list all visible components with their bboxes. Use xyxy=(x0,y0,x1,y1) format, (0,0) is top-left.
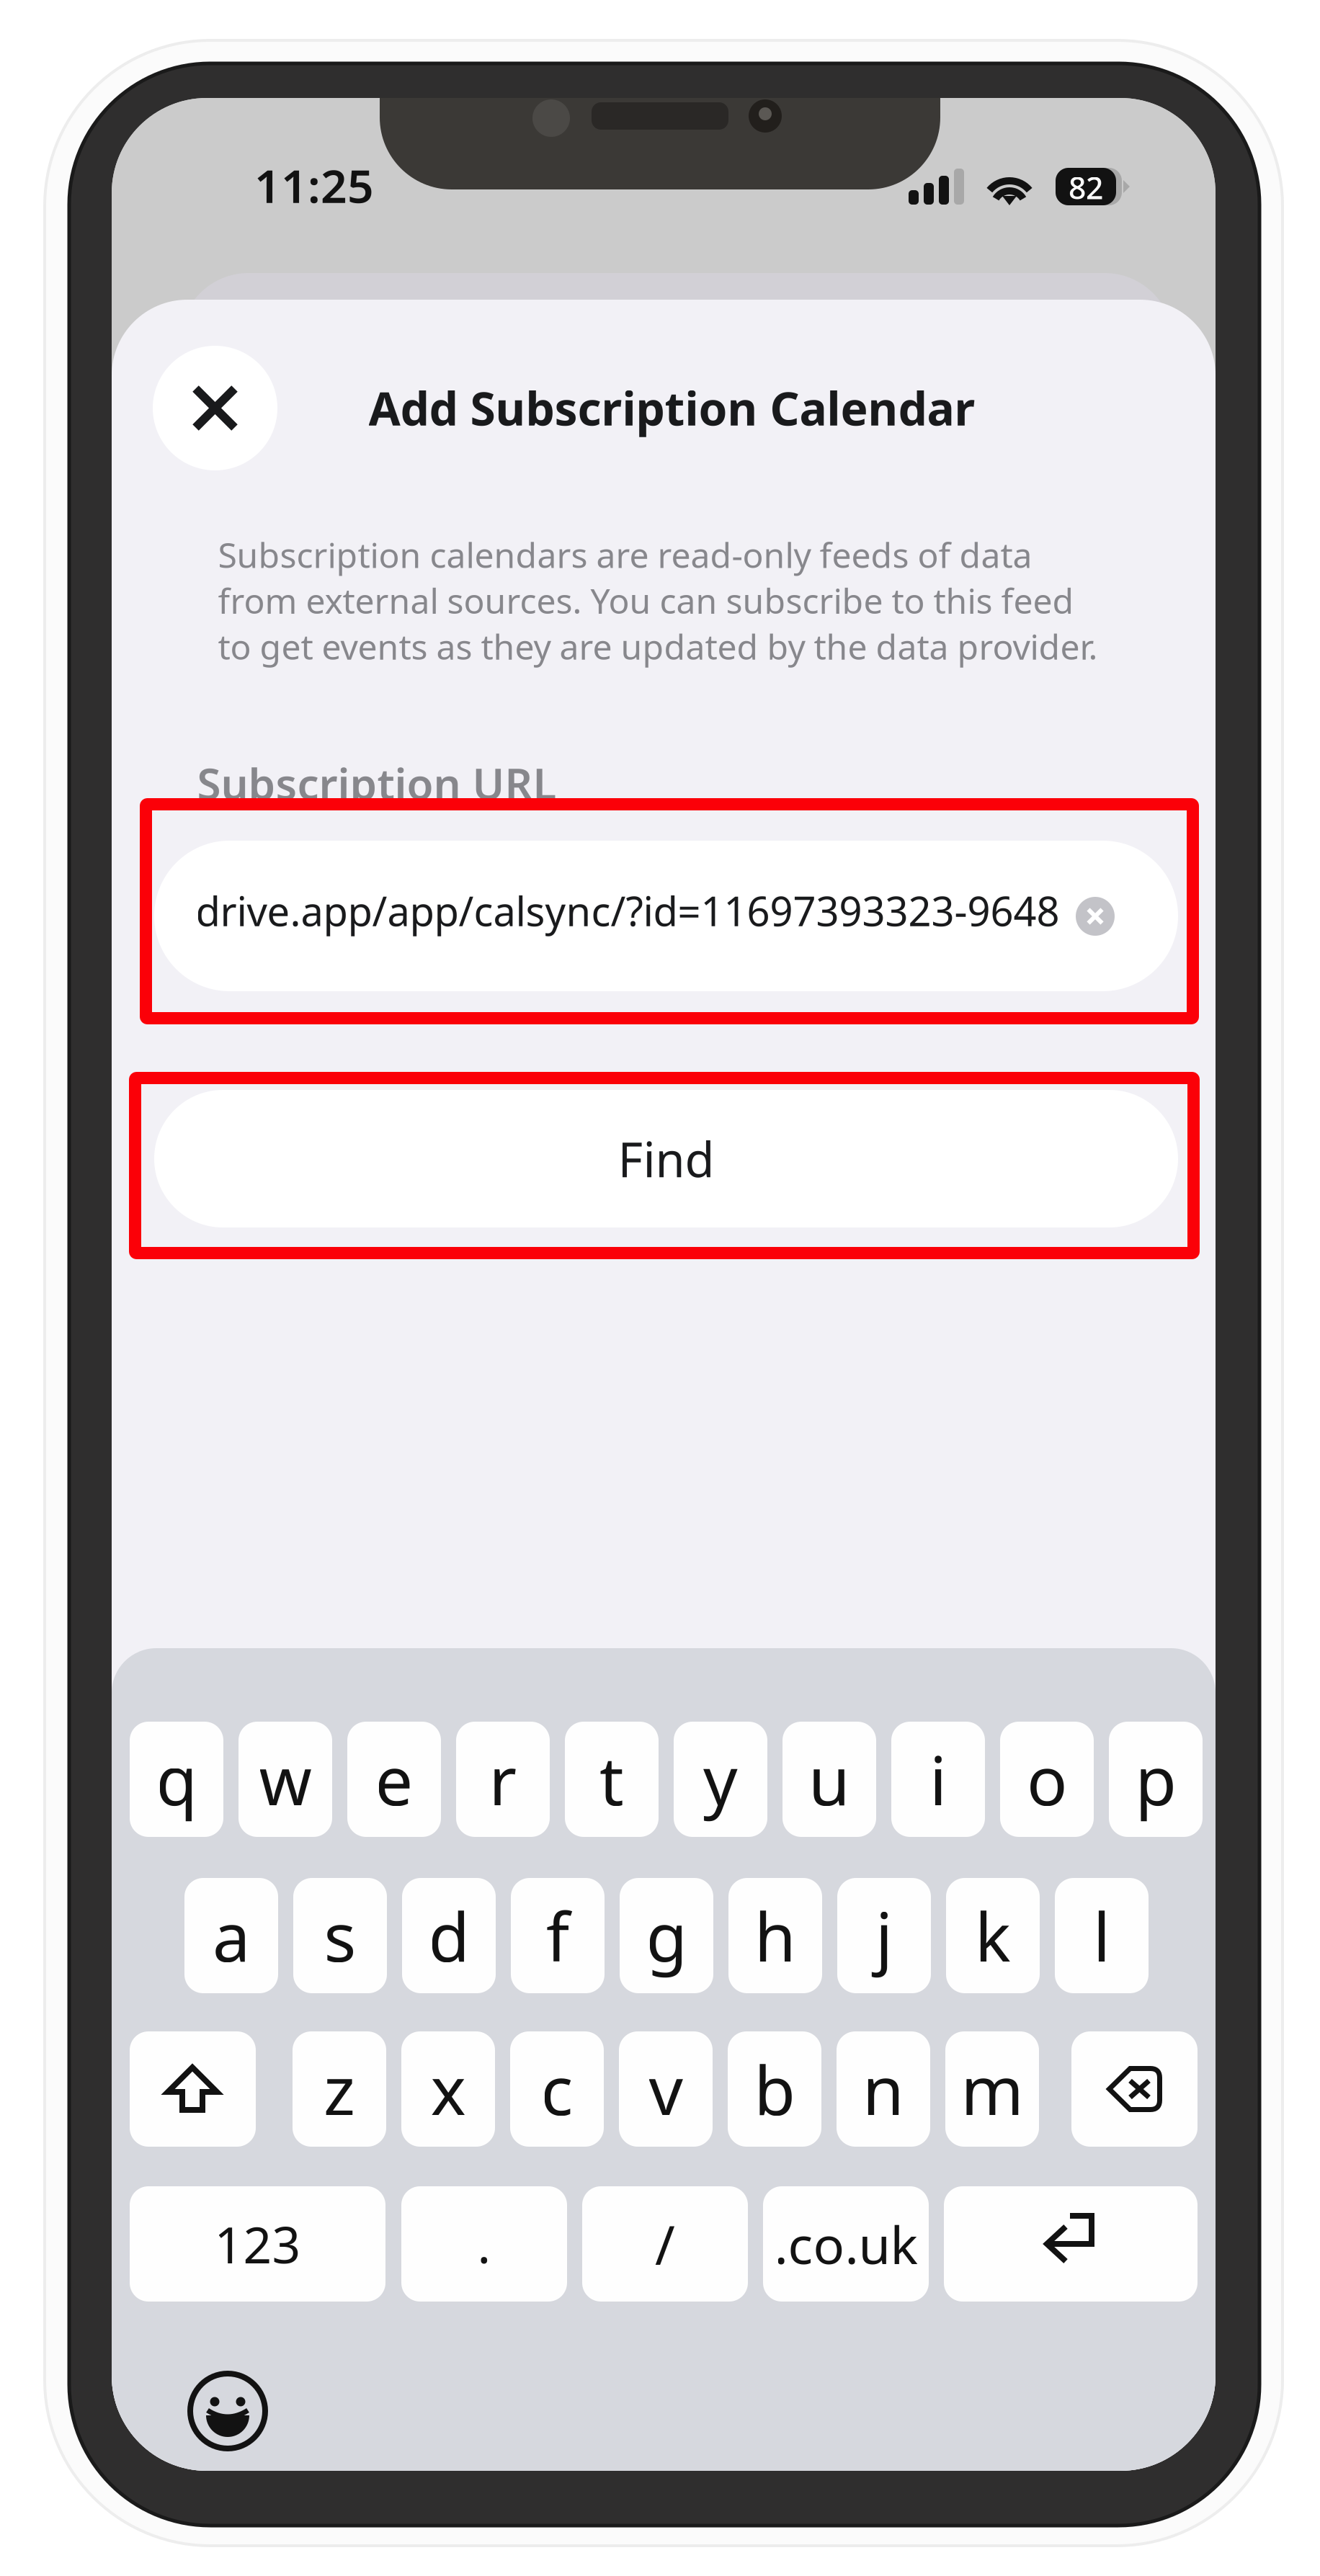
button[interactable]: d xyxy=(402,1878,496,1993)
staticText: d xyxy=(428,1891,469,1980)
button[interactable]: i xyxy=(891,1722,985,1837)
button[interactable]: u xyxy=(782,1722,876,1837)
button[interactable]: Emoji keyboard xyxy=(190,2374,265,2448)
staticText: e xyxy=(375,1735,413,1824)
staticText: w xyxy=(259,1735,312,1824)
button[interactable]: w xyxy=(238,1722,332,1837)
staticText: i xyxy=(929,1735,947,1824)
button[interactable]: x xyxy=(401,2031,495,2147)
button[interactable]: / xyxy=(582,2186,748,2302)
staticText: p xyxy=(1135,1735,1176,1824)
button[interactable]: .co.uk xyxy=(763,2186,929,2302)
staticText: g xyxy=(646,1891,687,1980)
staticText: t xyxy=(599,1735,624,1824)
button[interactable]: . xyxy=(401,2186,567,2302)
staticText: k xyxy=(975,1891,1011,1980)
staticText: v xyxy=(649,2044,683,2134)
staticText: j xyxy=(875,1891,893,1980)
button[interactable]: l xyxy=(1055,1878,1149,1993)
staticText: l xyxy=(1093,1891,1110,1980)
staticText: f xyxy=(546,1891,569,1980)
staticText: 82 xyxy=(1069,167,1103,208)
button[interactable]: h xyxy=(728,1878,822,1993)
button[interactable]: Find xyxy=(154,1090,1178,1227)
staticText: a xyxy=(213,1891,250,1980)
button[interactable]: m xyxy=(945,2031,1039,2147)
button[interactable]: t xyxy=(565,1722,659,1837)
button[interactable]: k xyxy=(946,1878,1040,1993)
button[interactable]: v xyxy=(619,2031,713,2147)
button[interactable]: e xyxy=(347,1722,441,1837)
staticText: o xyxy=(1027,1735,1067,1824)
staticText: y xyxy=(703,1735,738,1824)
button[interactable]: p xyxy=(1109,1722,1203,1837)
staticText: r xyxy=(489,1735,517,1824)
button[interactable]: b xyxy=(728,2031,821,2147)
staticText: z xyxy=(324,2044,355,2134)
staticText: .co.uk xyxy=(774,2209,918,2278)
button[interactable]: Clear text xyxy=(1076,897,1115,936)
button[interactable]: n xyxy=(837,2031,930,2147)
button[interactable]: y xyxy=(674,1722,767,1837)
staticText: x xyxy=(431,2044,466,2134)
button[interactable]: r xyxy=(456,1722,550,1837)
button[interactable]: Return xyxy=(944,2186,1198,2302)
button[interactable]: s xyxy=(293,1878,387,1993)
staticText: n xyxy=(862,2044,904,2134)
button[interactable]: g xyxy=(620,1878,713,1993)
staticText: b xyxy=(754,2044,795,2134)
staticText: h xyxy=(754,1891,796,1980)
button[interactable]: Shift xyxy=(130,2031,256,2147)
staticText: Find xyxy=(618,1127,714,1191)
button[interactable]: j xyxy=(837,1878,931,1993)
staticText: q xyxy=(156,1735,197,1824)
button[interactable]: o xyxy=(1000,1722,1094,1837)
staticText: u xyxy=(808,1735,850,1824)
staticText: s xyxy=(324,1891,356,1980)
staticText: 11:25 xyxy=(254,155,374,216)
staticText: drive.app/app/calsync/?id=11697393323-96… xyxy=(196,884,1060,937)
staticText: 123 xyxy=(214,2211,301,2277)
button[interactable]: f xyxy=(511,1878,605,1993)
staticText: . xyxy=(477,2211,491,2277)
staticText: m xyxy=(961,2044,1024,2134)
button[interactable]: q xyxy=(130,1722,223,1837)
staticText: Add Subscription Calendar xyxy=(369,377,975,438)
staticText: Subscription URL xyxy=(197,754,557,812)
button[interactable]: Delete xyxy=(1071,2031,1198,2147)
button[interactable]: z xyxy=(293,2031,386,2147)
staticText: c xyxy=(541,2044,573,2134)
staticText: / xyxy=(655,2208,675,2280)
staticText: Subscription calendars are read-only fee… xyxy=(218,532,1098,669)
button[interactable]: Close xyxy=(153,346,277,470)
button[interactable]: c xyxy=(510,2031,604,2147)
button[interactable]: 123 xyxy=(130,2186,385,2302)
button[interactable]: a xyxy=(184,1878,278,1993)
